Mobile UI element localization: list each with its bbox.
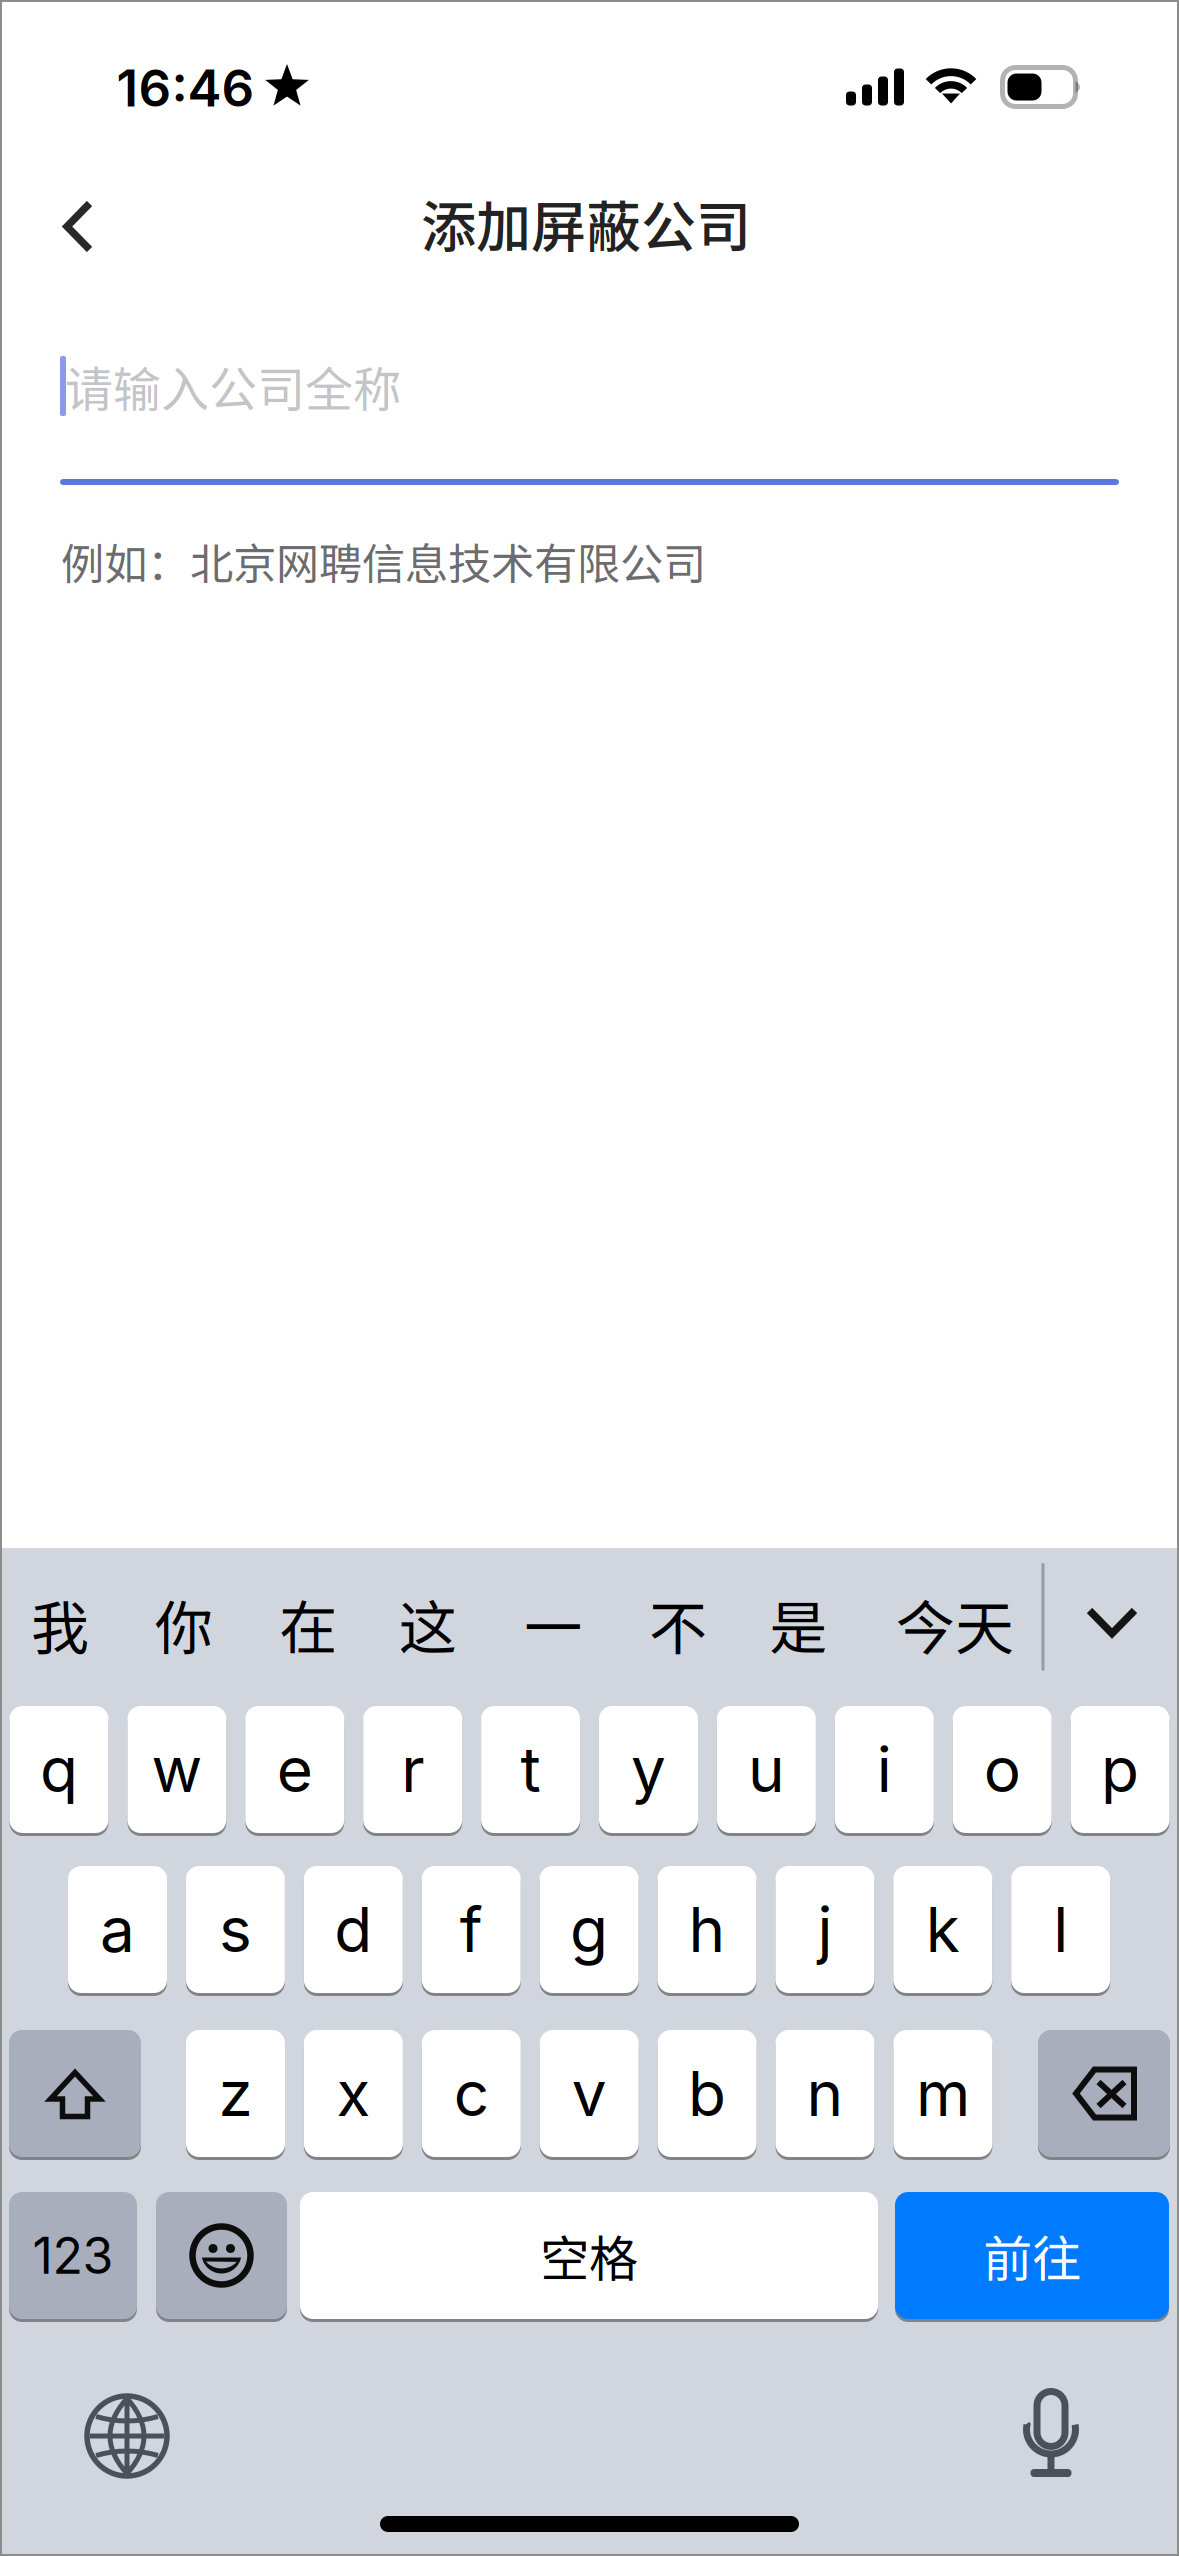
button[interactable]: s: [186, 1866, 285, 1996]
button[interactable]: y: [599, 1706, 698, 1836]
button[interactable]: f: [422, 1866, 521, 1996]
staticText: o: [984, 1732, 1021, 1807]
button[interactable]: Dictation: [981, 2364, 1121, 2504]
staticText: e: [277, 1732, 313, 1807]
button[interactable]: 123: [9, 2192, 137, 2322]
button[interactable]: Switch keyboard: [52, 2366, 202, 2506]
staticText: 这: [399, 1582, 457, 1666]
button[interactable]: g: [540, 1866, 639, 1996]
staticText: v: [572, 2056, 607, 2131]
button[interactable]: 你: [139, 1569, 229, 1679]
staticText: w: [151, 1732, 202, 1807]
button[interactable]: r: [363, 1706, 462, 1836]
button[interactable]: 前往: [895, 2192, 1169, 2322]
button[interactable]: j: [775, 1866, 874, 1996]
button[interactable]: b: [658, 2030, 757, 2160]
staticText: x: [336, 2056, 370, 2131]
button[interactable]: n: [775, 2030, 874, 2160]
button[interactable]: 一: [508, 1569, 598, 1679]
staticText: 123: [32, 2225, 113, 2286]
button[interactable]: Hide candidates: [1057, 1567, 1167, 1677]
staticText: g: [570, 1892, 608, 1967]
staticText: l: [1053, 1892, 1068, 1967]
button[interactable]: 是: [753, 1569, 843, 1679]
staticText: 例如：北京网聘信息技术有限公司: [61, 530, 706, 592]
button[interactable]: v: [540, 2030, 639, 2160]
button[interactable]: e: [245, 1706, 344, 1836]
staticText: 一: [524, 1582, 582, 1666]
staticText: 前往: [983, 2220, 1081, 2291]
button[interactable]: d: [304, 1866, 403, 1996]
staticText: q: [40, 1732, 78, 1807]
staticText: j: [817, 1892, 832, 1967]
staticText: 今天: [896, 1581, 1014, 1667]
button[interactable]: h: [657, 1866, 756, 1996]
button[interactable]: m: [893, 2030, 992, 2160]
staticText: 是: [769, 1582, 827, 1666]
staticText: n: [806, 2056, 843, 2131]
staticText: k: [926, 1892, 960, 1967]
staticText: z: [218, 2056, 252, 2131]
button[interactable]: l: [1011, 1866, 1110, 1996]
button[interactable]: 不: [633, 1569, 723, 1679]
staticText: 16:46: [116, 57, 254, 119]
button[interactable]: q: [9, 1706, 108, 1836]
staticText: 不: [649, 1582, 707, 1666]
button[interactable]: x: [304, 2030, 403, 2160]
button[interactable]: t: [481, 1706, 580, 1836]
staticText: d: [334, 1892, 372, 1967]
button[interactable]: o: [953, 1706, 1052, 1836]
button[interactable]: p: [1071, 1706, 1170, 1836]
staticText: y: [631, 1732, 666, 1807]
staticText: s: [219, 1892, 252, 1967]
staticText: u: [748, 1732, 785, 1807]
button[interactable]: 在: [263, 1569, 353, 1679]
button[interactable]: z: [186, 2030, 285, 2160]
button[interactable]: Back: [18, 166, 138, 286]
staticText: 我: [31, 1582, 89, 1666]
staticText: 你: [155, 1582, 213, 1666]
staticText: i: [877, 1732, 892, 1807]
staticText: t: [521, 1732, 541, 1807]
button[interactable]: c: [422, 2030, 521, 2160]
staticText: 空格: [540, 2220, 638, 2291]
button[interactable]: Delete: [1038, 2030, 1170, 2160]
staticText: a: [100, 1892, 135, 1967]
button[interactable]: w: [127, 1706, 226, 1836]
button[interactable]: Shift: [9, 2030, 141, 2160]
button[interactable]: a: [68, 1866, 167, 1996]
button[interactable]: 今天: [890, 1569, 1020, 1679]
staticText: 添加屏蔽公司: [421, 183, 751, 263]
staticText: 在: [279, 1582, 337, 1666]
staticText: f: [460, 1892, 483, 1967]
staticText: r: [401, 1732, 424, 1807]
staticText: 请输入公司全称: [65, 351, 401, 421]
button[interactable]: i: [835, 1706, 934, 1836]
staticText: b: [688, 2056, 726, 2131]
staticText: m: [916, 2056, 970, 2131]
staticText: h: [688, 1892, 725, 1967]
staticText: c: [454, 2056, 489, 2131]
button[interactable]: 这: [383, 1569, 473, 1679]
button[interactable]: 我: [15, 1569, 105, 1679]
button[interactable]: Emoji: [156, 2192, 287, 2322]
button[interactable]: 空格: [300, 2192, 878, 2322]
button[interactable]: k: [893, 1866, 992, 1996]
staticText: p: [1101, 1732, 1139, 1807]
button[interactable]: u: [717, 1706, 816, 1836]
